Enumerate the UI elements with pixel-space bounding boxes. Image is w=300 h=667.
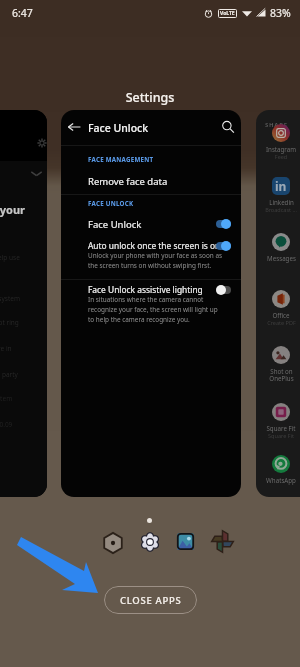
button[interactable]: Face Unlock <box>61 214 241 236</box>
staticText: r your <box>0 202 25 217</box>
staticText: in <box>275 178 287 194</box>
staticText: to help use <box>0 253 20 262</box>
button[interactable]: Back <box>67 120 81 134</box>
staticText: Create PDF <box>267 319 296 326</box>
staticText: Square Fit <box>268 432 294 439</box>
button[interactable]: CLOSE APPS <box>104 586 197 614</box>
staticText: Face Unlock assistive lighting <box>88 284 203 295</box>
staticText: Messages <box>267 254 296 262</box>
staticText: the screen turns on without swiping firs… <box>88 261 212 270</box>
staticText: recognize your face, the screen will lig… <box>88 305 218 314</box>
staticText: hird party <box>0 370 18 379</box>
staticText: In situations where the camera cannot <box>88 295 204 304</box>
staticText: to help the camera recognize you. <box>88 315 190 324</box>
staticText: WhatsApp <box>266 476 296 484</box>
button[interactable]: Shot on OnePlus <box>256 346 300 383</box>
staticText: Feed <box>256 153 300 160</box>
button[interactable]: Square Fit <box>256 403 300 439</box>
staticText: stem <box>0 394 13 403</box>
button[interactable]: Settings <box>141 533 159 551</box>
button[interactable]: SHARE <box>256 110 300 497</box>
staticText: Face Unlock <box>88 218 142 231</box>
button[interactable]: WhatsApp <box>256 455 300 484</box>
staticText: e system <box>0 294 20 303</box>
button[interactable]: App shortcut <box>102 532 124 554</box>
button[interactable]: Face Unlock assistive lighting <box>61 280 241 332</box>
staticText: VoLTE <box>220 10 235 17</box>
button[interactable]: r your <box>0 110 47 497</box>
staticText: Auto unlock once the screen is on <box>88 240 221 251</box>
staticText: re in <box>0 344 12 353</box>
staticText: CLOSE APPS <box>120 594 182 607</box>
staticText: Face Unlock <box>88 121 149 135</box>
button[interactable]: Auto unlock once the screen is on <box>61 236 241 279</box>
staticText: SHARE <box>265 121 288 129</box>
button[interactable]: Office <box>256 290 300 326</box>
staticText: 020.09 <box>0 420 13 429</box>
staticText: Remove face data <box>88 175 168 188</box>
button[interactable]: Remove face data <box>61 172 241 194</box>
button[interactable]: Messages <box>256 233 300 262</box>
staticText: FACE UNLOCK <box>88 199 134 207</box>
staticText: Square Fit <box>266 424 296 432</box>
button[interactable]: Back <box>61 110 241 497</box>
staticText: Linkedin <box>269 198 294 206</box>
staticText: Shot on OnePlus <box>269 367 294 383</box>
staticText: es not ring <box>0 318 19 327</box>
staticText: Settings <box>0 89 300 106</box>
button[interactable]: Gallery <box>177 533 194 550</box>
staticText: Broadcast ... <box>265 206 297 213</box>
button[interactable]: Photos <box>211 530 234 553</box>
staticText: Unlock your phone with your face as soon… <box>88 251 223 260</box>
staticText: Office <box>272 311 290 319</box>
button[interactable]: Search <box>221 120 235 134</box>
staticText: 6:47 <box>12 6 33 20</box>
staticText: FACE MANAGEMENT <box>88 155 154 163</box>
button[interactable]: in <box>256 177 300 213</box>
staticText: Instagram <box>256 145 300 153</box>
staticText: 83% <box>270 6 291 20</box>
